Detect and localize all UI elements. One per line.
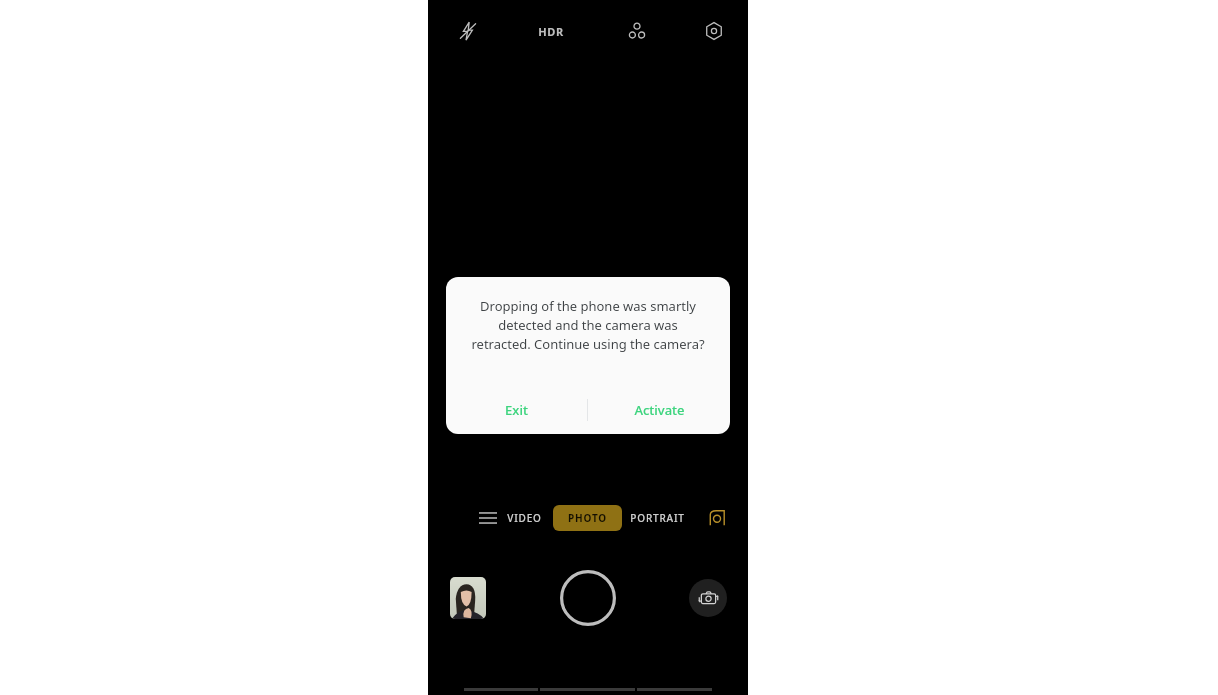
- button[interactable]: VIDEO: [496, 503, 552, 533]
- button[interactable]: Modes menu: [472, 502, 504, 534]
- button[interactable]: Shutter: [557, 567, 619, 629]
- button[interactable]: Activate: [588, 385, 730, 434]
- staticText: HDR: [538, 24, 564, 39]
- staticText: VIDEO: [507, 511, 542, 525]
- button[interactable]: Exit: [446, 385, 587, 434]
- staticText: Exit: [505, 401, 528, 419]
- button[interactable]: Flash off: [428, 0, 508, 62]
- staticText: PHOTO: [568, 511, 607, 525]
- button[interactable]: PORTRAIT: [630, 503, 688, 533]
- button[interactable]: HDR: [508, 0, 594, 62]
- button[interactable]: Settings: [680, 0, 748, 62]
- staticText: PORTRAIT: [630, 511, 685, 525]
- button[interactable]: AI scene: [704, 505, 730, 531]
- button[interactable]: PHOTO: [553, 505, 622, 531]
- button[interactable]: Switch camera: [689, 579, 727, 617]
- button[interactable]: Filters: [594, 0, 680, 62]
- button[interactable]: Gallery: [450, 577, 486, 619]
- staticText: Dropping of the phone was smartly detect…: [468, 297, 708, 353]
- staticText: Activate: [634, 401, 685, 419]
